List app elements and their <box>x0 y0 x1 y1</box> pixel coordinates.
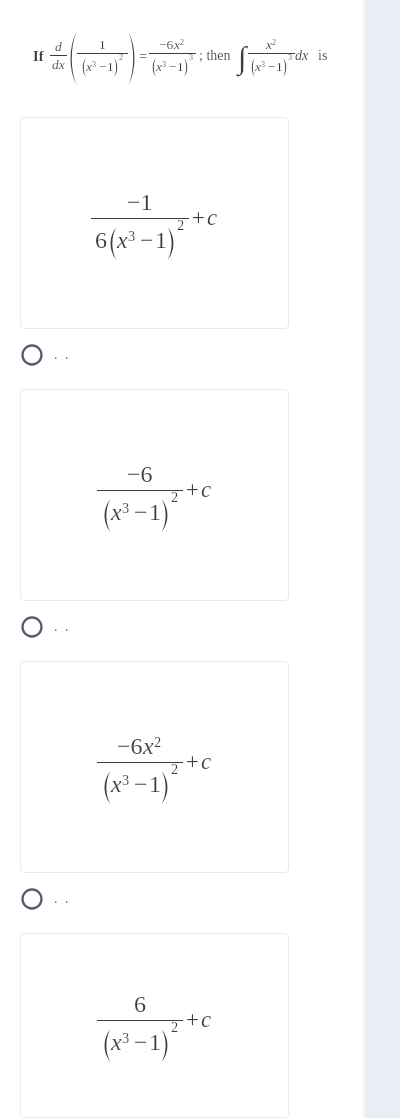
staticText: . <box>65 891 69 907</box>
staticText: 3 <box>92 60 97 69</box>
staticText: 1 <box>149 771 161 798</box>
staticText: + <box>186 477 199 502</box>
staticText: 1 <box>276 59 283 74</box>
staticText: 2 <box>171 761 179 777</box>
button[interactable]: −6 <box>20 661 289 873</box>
staticText: 3 <box>122 772 130 788</box>
button[interactable]: −1 <box>20 117 289 329</box>
button[interactable]: Select answer <box>0 329 400 389</box>
staticText: 3 <box>288 53 293 62</box>
staticText: 1 <box>155 227 167 254</box>
staticText: − <box>268 59 276 74</box>
button[interactable]: 6 <box>20 933 289 1118</box>
staticText: d <box>55 39 62 54</box>
staticText: . <box>65 347 69 363</box>
staticText: 3 <box>261 60 266 69</box>
staticText: + <box>186 749 199 774</box>
staticText: dx <box>295 48 309 64</box>
staticText: . <box>54 891 58 907</box>
staticText: x <box>111 499 122 526</box>
staticText: x <box>86 59 92 74</box>
staticText: ∫ <box>238 40 247 74</box>
staticText: 2 <box>177 217 185 233</box>
staticText: ; then <box>199 48 231 64</box>
staticText: x <box>266 37 272 52</box>
staticText: c <box>201 749 212 774</box>
staticText: c <box>201 477 212 502</box>
staticText: 2 <box>171 1019 179 1035</box>
staticText: + <box>186 1007 199 1032</box>
staticText: 1 <box>99 37 106 52</box>
staticText: − <box>140 227 154 254</box>
button[interactable]: Select answer <box>0 601 400 661</box>
button[interactable]: −6 <box>20 389 289 601</box>
staticText: x <box>117 227 128 254</box>
staticText: 2 <box>180 38 185 47</box>
staticText: −6 <box>117 733 143 760</box>
staticText: 3 <box>189 53 194 62</box>
staticText: 2 <box>171 489 179 505</box>
staticText: 1 <box>107 59 114 74</box>
staticText: 2 <box>154 734 162 750</box>
staticText: 1 <box>177 59 184 74</box>
staticText: 2 <box>272 38 277 47</box>
staticText: 3 <box>122 1030 130 1046</box>
staticText: −1 <box>127 189 153 216</box>
staticText: x <box>143 733 154 760</box>
staticText: 2 <box>119 53 124 62</box>
staticText: c <box>201 1007 212 1032</box>
staticText: = <box>139 48 148 64</box>
staticText: − <box>134 499 148 526</box>
staticText: dx <box>52 57 65 72</box>
staticText: c <box>207 205 218 230</box>
staticText: − <box>169 59 177 74</box>
staticText: −6 <box>159 37 174 52</box>
staticText: 1 <box>149 1029 161 1056</box>
staticText: 3 <box>162 60 167 69</box>
staticText: 3 <box>122 500 130 516</box>
staticText: + <box>192 205 205 230</box>
staticText: . <box>54 619 58 635</box>
staticText: 6 <box>134 991 146 1018</box>
staticText: is <box>318 48 328 64</box>
staticText: x <box>174 37 180 52</box>
staticText: If <box>33 48 44 64</box>
staticText: −6 <box>127 461 153 488</box>
staticText: x <box>156 59 162 74</box>
staticText: . <box>65 619 69 635</box>
staticText: − <box>99 59 107 74</box>
staticText: 3 <box>128 228 136 244</box>
staticText: − <box>134 1029 148 1056</box>
button[interactable]: Select answer <box>0 873 400 933</box>
staticText: 1 <box>149 499 161 526</box>
staticText: x <box>255 59 261 74</box>
staticText: − <box>134 771 148 798</box>
staticText: x <box>111 1029 122 1056</box>
staticText: 6 <box>95 227 107 254</box>
staticText: x <box>111 771 122 798</box>
staticText: . <box>54 347 58 363</box>
